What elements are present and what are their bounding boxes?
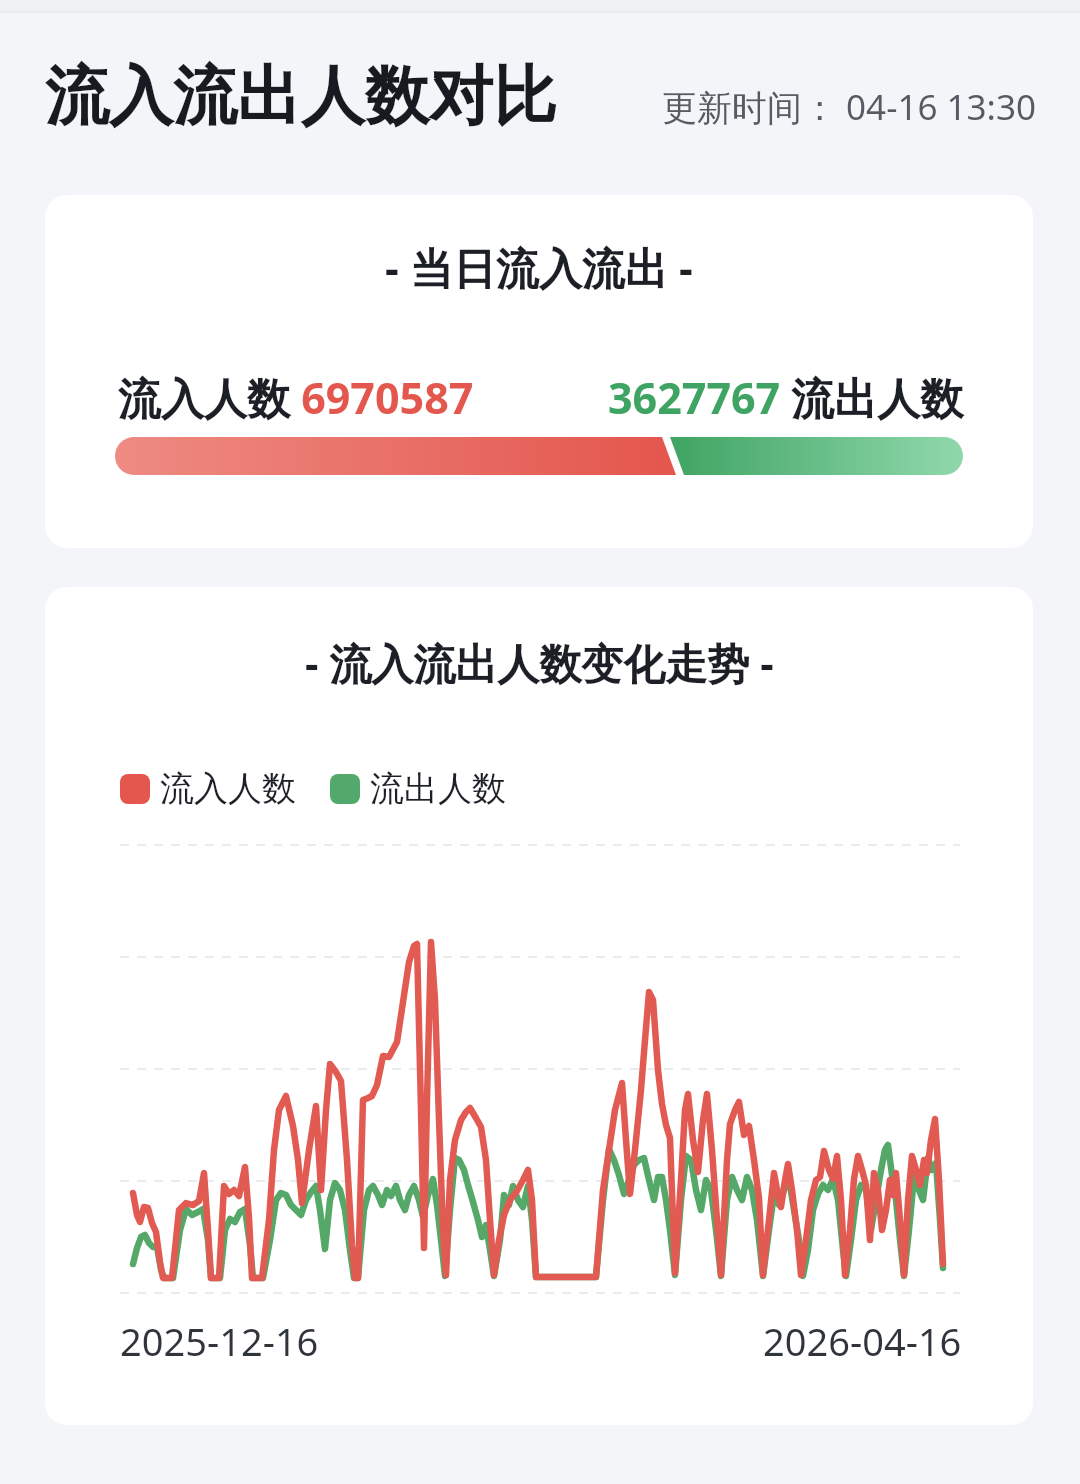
staticText: 3627767 流出人数 [608,368,964,427]
staticText: - 流入流出人数变化走势 - [305,634,774,691]
button[interactable]: - 流入流出人数变化走势 - [45,587,1033,1425]
staticText: 流入人数 [160,767,296,810]
staticText: 流出人数 [370,767,506,810]
staticText: 2025-12-16 [120,1315,319,1367]
staticText: - 当日流入流出 - [385,238,693,297]
staticText: 更新时间： 04-16 13:30 [662,83,1037,131]
staticText: 流入流出人数对比 [45,56,557,137]
staticText: 流入人数 6970587 [118,368,474,427]
staticText: 2026-04-16 [763,1315,962,1367]
button[interactable]: - 当日流入流出 - [45,195,1033,548]
